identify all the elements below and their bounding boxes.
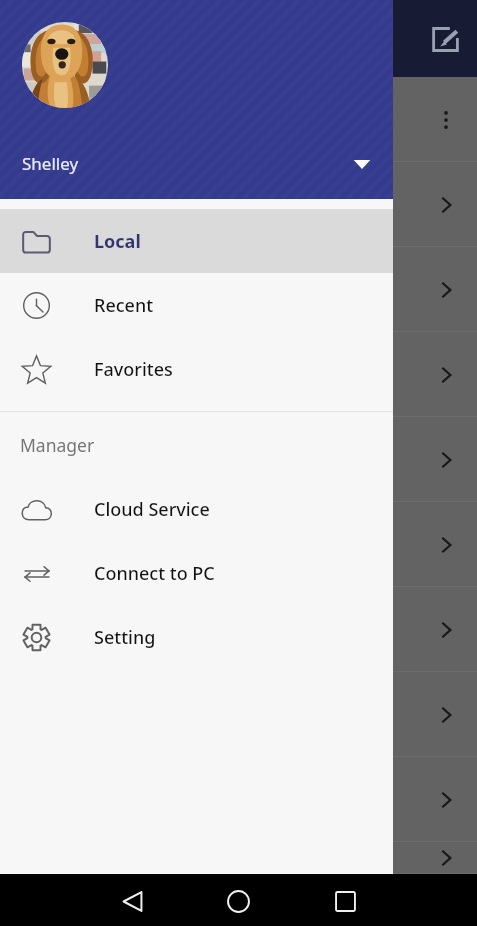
button[interactable]: Favorites xyxy=(0,337,393,401)
staticText: Connect to PC xyxy=(94,561,215,586)
button[interactable]: Connect to PC xyxy=(0,541,393,605)
button[interactable]: Recent xyxy=(0,273,393,337)
staticText: Manager xyxy=(20,433,95,457)
button[interactable]: Shelley xyxy=(0,139,393,187)
staticText: Cloud Service xyxy=(94,497,210,522)
button[interactable]: Profile photo xyxy=(22,22,108,108)
button[interactable]: Setting xyxy=(0,605,393,669)
staticText: Shelley xyxy=(22,152,79,175)
button[interactable]: Back xyxy=(108,877,156,925)
button[interactable]: Local xyxy=(0,209,393,273)
staticText: Local xyxy=(94,229,141,254)
button[interactable]: Edit xyxy=(421,15,469,63)
staticText: Favorites xyxy=(94,357,173,382)
button[interactable]: Cloud Service xyxy=(0,477,393,541)
button[interactable]: Recents xyxy=(321,877,369,925)
staticText: Recent xyxy=(94,293,154,318)
staticText: Setting xyxy=(94,625,156,650)
button[interactable]: Home xyxy=(214,877,262,925)
